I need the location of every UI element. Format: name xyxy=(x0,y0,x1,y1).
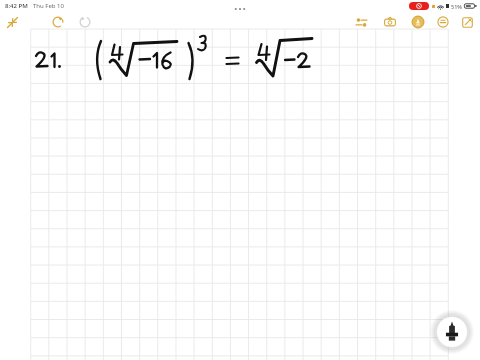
button[interactable]: More xyxy=(227,3,253,15)
button[interactable]: Settings xyxy=(353,14,369,30)
button[interactable]: Pen tool xyxy=(434,314,470,350)
staticText: Thu Feb 10 xyxy=(33,2,64,10)
button[interactable]: Compose xyxy=(459,14,475,30)
button[interactable]: Redo xyxy=(77,14,93,30)
button[interactable]: Undo xyxy=(50,14,66,30)
button[interactable]: Eraser xyxy=(435,14,451,30)
staticText: 8:42 PM xyxy=(5,2,28,10)
button[interactable]: Exit full screen xyxy=(4,14,20,30)
button[interactable]: Camera xyxy=(382,14,398,30)
button[interactable]: Pen color xyxy=(410,14,426,30)
staticText: 51% xyxy=(451,3,462,10)
